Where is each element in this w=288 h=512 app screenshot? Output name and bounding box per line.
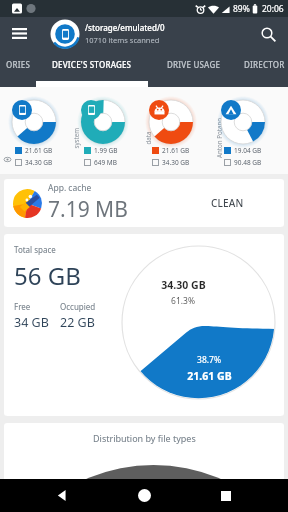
staticText: Occupied [60,301,96,312]
staticText: 1.99 GB [94,146,118,155]
staticText: DIRECTOR [244,59,285,70]
button[interactable]: DEVICE'S STORAGES [36,50,148,79]
staticText: App. cache [48,182,92,194]
staticText: 7.19 MB [48,195,128,224]
button[interactable]: data [144,87,216,174]
staticText: 61.3% [171,295,195,307]
staticText: 90.48 GB [234,158,262,167]
button[interactable]: Recent apps [206,479,246,512]
staticText: 38.7% [197,354,221,366]
staticText: Free [14,301,31,312]
staticText: 10710 items scanned [85,35,160,45]
staticText: DRIVE USAGE [167,59,221,70]
staticText: 21.61 GB [25,146,53,155]
staticText: system [71,127,79,148]
staticText: CLEAN [211,196,244,210]
button[interactable]: DRIVE USAGE [148,50,240,79]
staticText: 89% [233,3,250,15]
button[interactable]: 21.61 GB [0,87,72,174]
staticText: 21.61 GB [162,146,190,155]
staticText: 34.30 GB [25,158,53,167]
button[interactable]: Search [254,20,282,48]
staticText: 649 MB [94,158,117,167]
button[interactable]: DIRECTOR [240,50,288,79]
button[interactable]: Back [42,479,82,512]
staticText: Anton Potapovich [215,118,223,158]
staticText: Total space [14,244,56,255]
button[interactable]: CLEAN [200,189,255,217]
staticText: 56 GB [14,259,81,292]
staticText: DEVICE'S STORAGES [52,59,132,70]
staticText: ORIES [6,59,31,70]
button[interactable]: Home [124,479,164,512]
button[interactable]: system [72,87,144,174]
staticText: 34.30 GB [161,278,206,292]
staticText: data [143,131,151,144]
staticText: 22 GB [60,314,95,331]
staticText: 20:06 [262,3,284,15]
staticText: /storage/emulated/0 [85,22,165,33]
staticText: Distribution by file types [93,432,196,444]
staticText: 34 GB [14,314,49,331]
button[interactable]: Anton Potapovich [216,87,288,174]
button[interactable]: Open navigation drawer [5,19,34,48]
staticText: 34.30 GB [162,158,190,167]
staticText: 21.61 GB [187,369,232,383]
staticText: 19.04 GB [234,146,262,155]
button[interactable]: ORIES [0,50,36,79]
